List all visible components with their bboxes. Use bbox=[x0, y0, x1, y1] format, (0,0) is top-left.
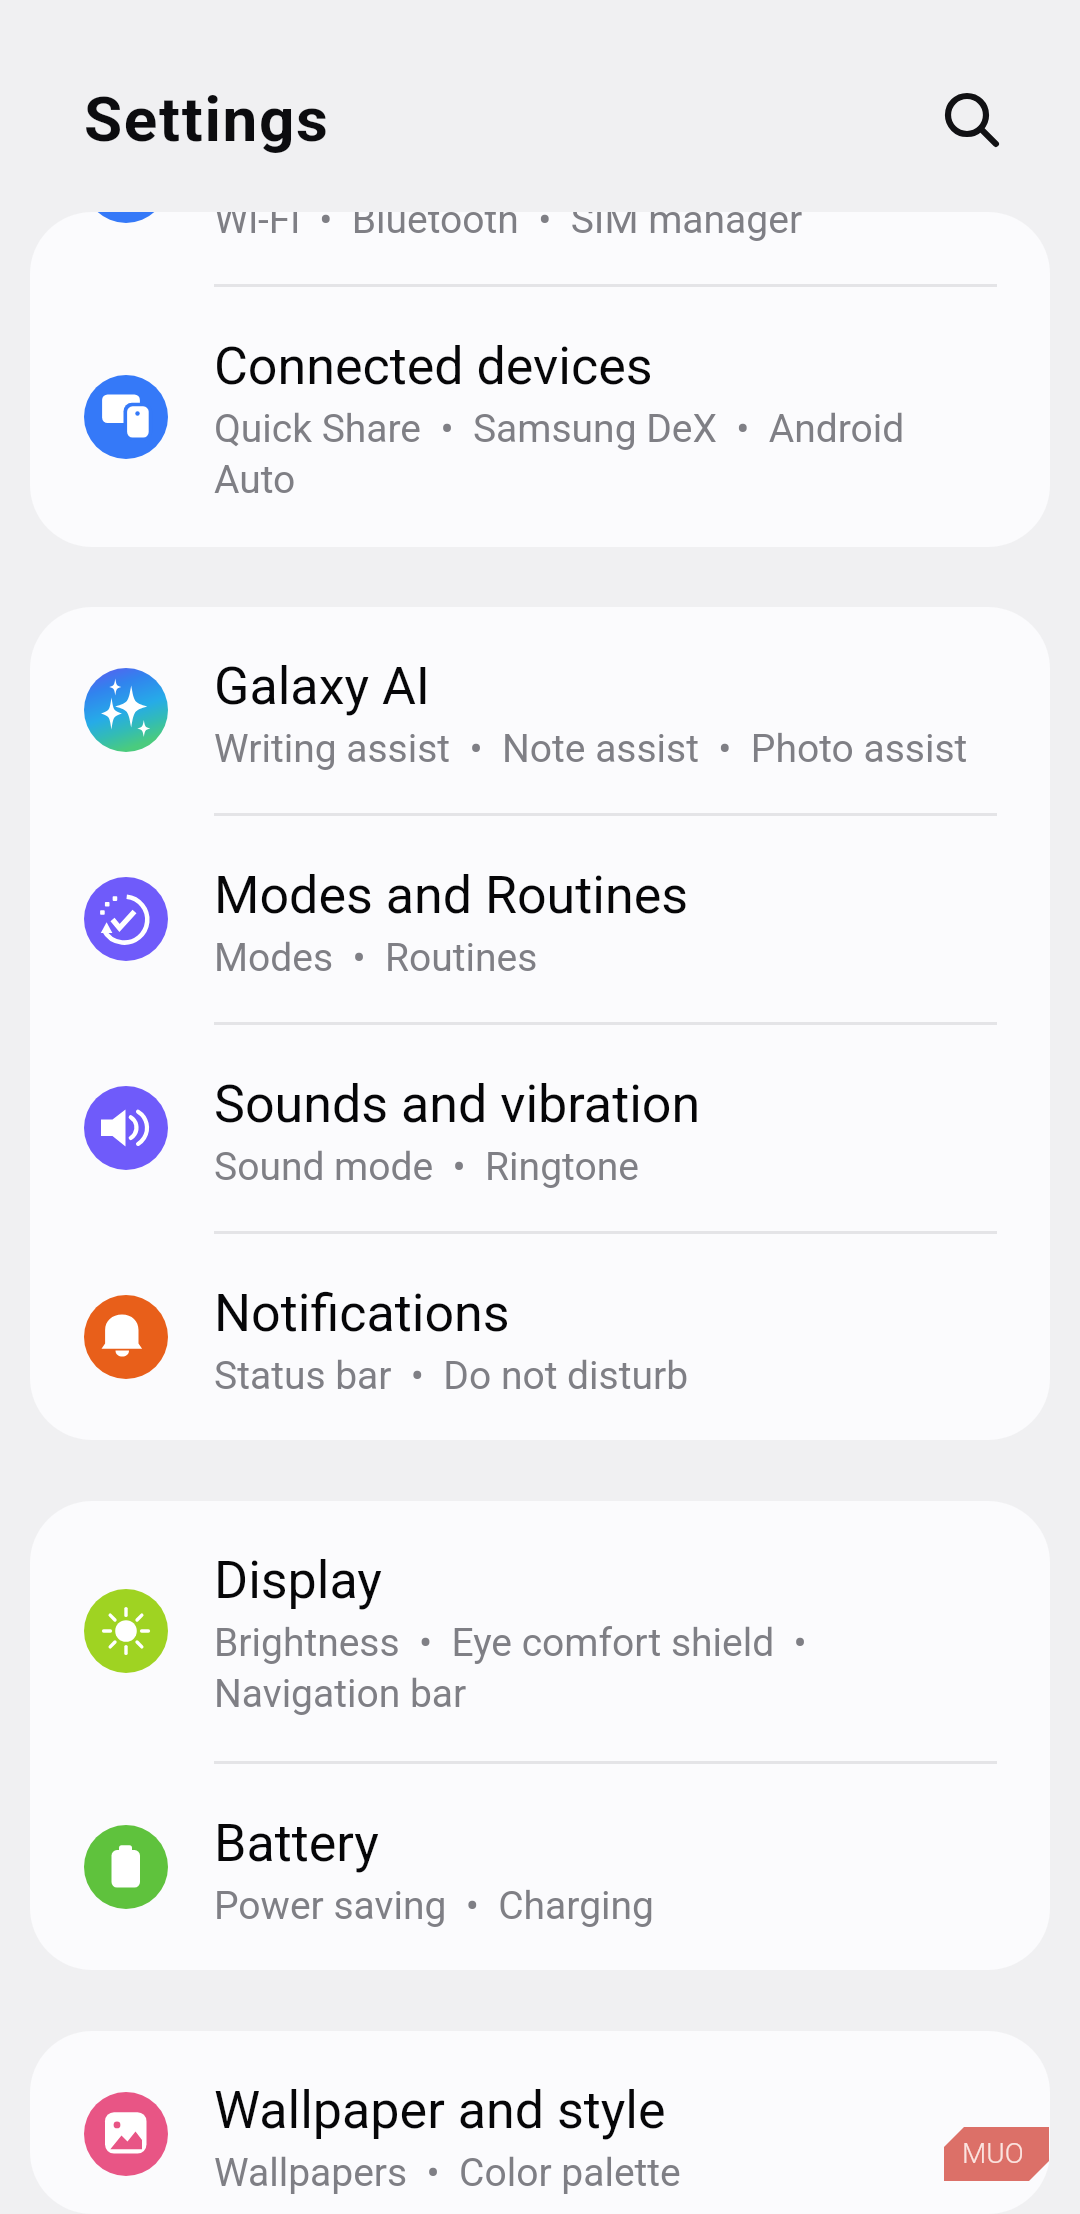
button[interactable]: Search bbox=[922, 70, 1012, 160]
button[interactable]: Network & internet bbox=[30, 212, 1050, 284]
button[interactable]: Display bbox=[30, 1501, 1050, 1761]
staticText: Power saving • Charging bbox=[214, 1883, 971, 1929]
staticText: Battery bbox=[214, 1813, 379, 1874]
staticText: Status bar • Do not disturb bbox=[214, 1353, 971, 1399]
staticText: Wallpapers • Color palette bbox=[214, 2150, 971, 2196]
button[interactable]: Sounds and vibration bbox=[30, 1025, 1050, 1231]
button[interactable]: Wallpaper and style bbox=[30, 2031, 1050, 2214]
staticText: Galaxy AI bbox=[214, 656, 430, 717]
staticText: Settings bbox=[84, 83, 330, 156]
button[interactable]: Battery bbox=[30, 1764, 1050, 1970]
staticText: Wi-Fi • Bluetooth • SIM manager bbox=[214, 212, 971, 243]
button[interactable]: Notifications bbox=[30, 1234, 1050, 1440]
staticText: Sounds and vibration bbox=[214, 1074, 701, 1135]
staticText: MUO bbox=[962, 2137, 1024, 2170]
staticText: Writing assist • Note assist • Photo ass… bbox=[214, 726, 971, 772]
staticText: Connected devices bbox=[214, 336, 653, 397]
staticText: Display bbox=[214, 1550, 382, 1611]
staticText: Sound mode • Ringtone bbox=[214, 1144, 971, 1190]
staticText: Modes and Routines bbox=[214, 865, 689, 926]
staticText: Wallpaper and style bbox=[214, 2080, 666, 2141]
staticText: Quick Share • Samsung DeX • Android Auto bbox=[214, 406, 971, 502]
staticText: Brightness • Eye comfort shield • Naviga… bbox=[214, 1620, 971, 1716]
button[interactable]: Connected devices bbox=[30, 287, 1050, 547]
button[interactable]: Galaxy AI bbox=[30, 607, 1050, 813]
staticText: Notifications bbox=[214, 1283, 510, 1344]
button[interactable]: Modes and Routines bbox=[30, 816, 1050, 1022]
staticText: Modes • Routines bbox=[214, 935, 971, 981]
